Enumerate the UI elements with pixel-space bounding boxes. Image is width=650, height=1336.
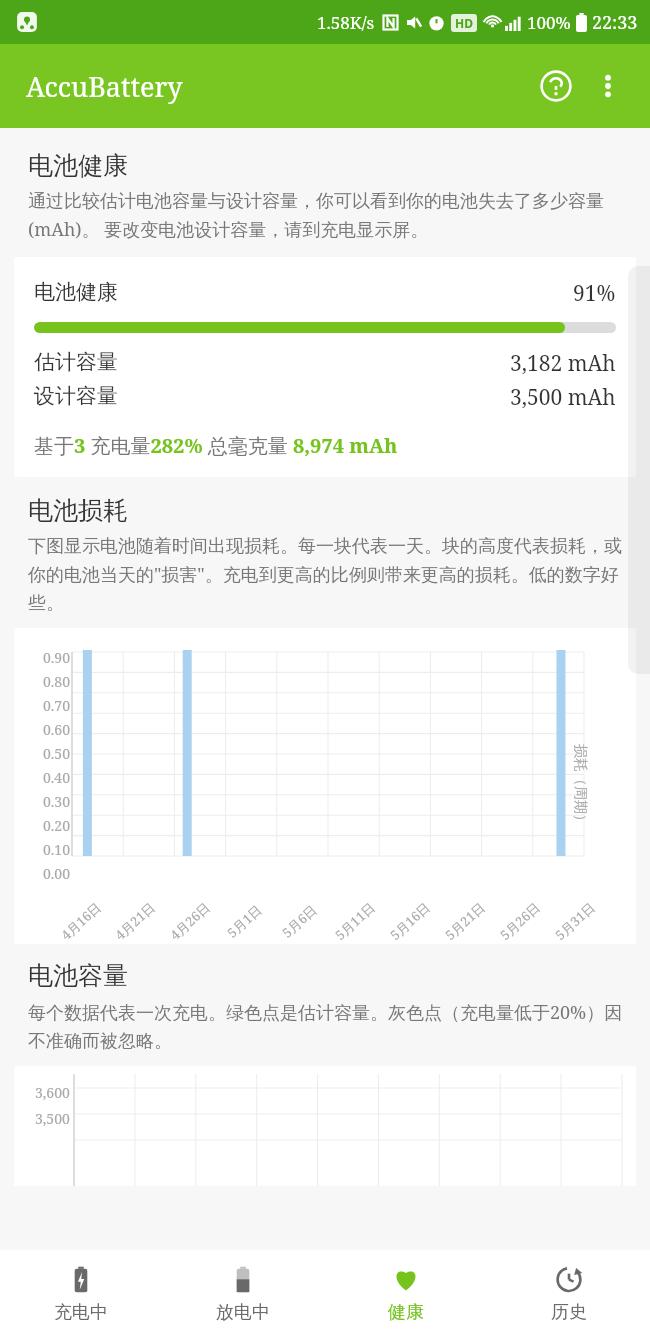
staticText: 4月21日: [111, 898, 159, 944]
staticText: 0.60: [43, 720, 70, 739]
staticText: 每个数据代表一次充电。绿色点是估计容量。灰色点（充电量低于20%）因不准确而被忽…: [28, 1000, 624, 1052]
staticText: 100%: [527, 11, 571, 34]
staticText: 5月11日: [331, 898, 379, 944]
staticText: 0.80: [43, 672, 70, 691]
staticText: 5月1日: [223, 901, 266, 941]
staticText: 下图显示电池随着时间出现损耗。每一块代表一天。块的高度代表损耗，或你的电池当天的…: [28, 535, 624, 614]
staticText: 5月16日: [386, 898, 434, 944]
staticText: 0.00: [43, 864, 70, 883]
staticText: 0.50: [43, 744, 70, 763]
button[interactable]: 历史: [487, 1250, 650, 1336]
staticText: 估计容量: [34, 349, 118, 375]
staticText: 0.90: [43, 648, 70, 667]
staticText: 基于3 充电量282% 总毫克量 8,974 mAh: [34, 432, 398, 459]
staticText: 充电中: [54, 1301, 108, 1324]
staticText: 0.20: [43, 816, 70, 835]
staticText: 5月6日: [278, 901, 321, 941]
button[interactable]: 放电中: [162, 1250, 324, 1336]
staticText: 通过比较估计电池容量与设计容量，你可以看到你的电池失去了多少容量(mAh)。 要…: [28, 190, 624, 241]
staticText: 电池健康: [28, 150, 128, 181]
staticText: 健康: [388, 1301, 424, 1324]
staticText: 22:33: [592, 10, 638, 35]
staticText: 0.40: [43, 768, 70, 787]
staticText: 0.10: [43, 840, 70, 859]
button[interactable]: 3,600: [14, 1066, 636, 1186]
staticText: AccuBattery: [26, 68, 183, 105]
staticText: 1.58K/s: [317, 11, 375, 34]
staticText: 3,600: [35, 1083, 70, 1102]
staticText: 5月21日: [441, 898, 489, 944]
staticText: 5月26日: [496, 898, 544, 944]
staticText: 3,500: [35, 1109, 70, 1128]
staticText: 0.30: [43, 792, 70, 811]
staticText: 设计容量: [34, 383, 118, 409]
staticText: 损耗（周期）: [571, 744, 589, 828]
button[interactable]: Help: [530, 60, 582, 112]
staticText: 3,182 mAh: [510, 349, 616, 378]
staticText: 放电中: [216, 1301, 270, 1324]
button[interactable]: 电池健康: [14, 257, 636, 477]
button[interactable]: More options: [582, 60, 634, 112]
staticText: 91%: [573, 279, 616, 308]
button[interactable]: 健康: [324, 1250, 487, 1336]
staticText: 历史: [551, 1301, 587, 1324]
staticText: 电池健康: [34, 279, 118, 305]
staticText: HD: [455, 15, 473, 31]
staticText: 4月26日: [166, 898, 214, 944]
staticText: 5月31日: [551, 898, 599, 944]
staticText: 电池容量: [28, 960, 128, 991]
staticText: 4月16日: [57, 898, 105, 944]
button[interactable]: 充电中: [0, 1250, 162, 1336]
button[interactable]: 0.90: [14, 628, 636, 944]
staticText: 3,500 mAh: [510, 383, 616, 412]
staticText: 0.70: [43, 696, 70, 715]
staticText: 电池损耗: [28, 495, 128, 526]
